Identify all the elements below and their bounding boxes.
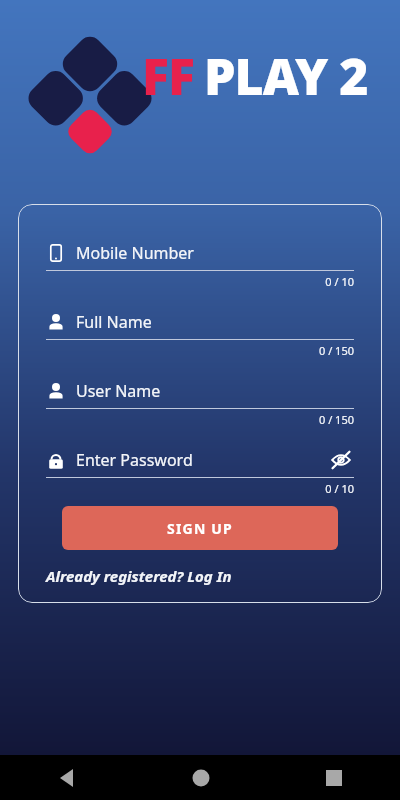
button[interactable]: SIGN UP [62,506,338,550]
button[interactable]: Mobile Number [46,238,354,289]
button[interactable]: Show password [328,447,354,473]
staticText: Already registered? Log In [46,566,232,586]
staticText: Full Name [76,311,152,333]
staticText: 0 / 10 [46,274,354,289]
staticText: SIGN UP [167,519,233,538]
staticText: User Name [76,380,161,402]
staticText: Enter Password [76,449,193,471]
button[interactable]: Back [0,755,134,800]
staticText: 0 / 10 [46,481,354,496]
staticText: Mobile Number [76,242,194,264]
staticText: PLAY 2 [204,42,368,110]
button[interactable]: Full Name [46,307,354,358]
button[interactable]: Recent apps [267,755,400,800]
staticText: 0 / 150 [46,343,354,358]
button[interactable]: Enter Password [46,445,354,496]
staticText: 0 / 150 [46,412,354,427]
button[interactable]: Already registered? Log In [46,564,232,588]
button[interactable]: Home [134,755,267,800]
button[interactable]: User Name [46,376,354,427]
staticText: FF [142,42,194,110]
